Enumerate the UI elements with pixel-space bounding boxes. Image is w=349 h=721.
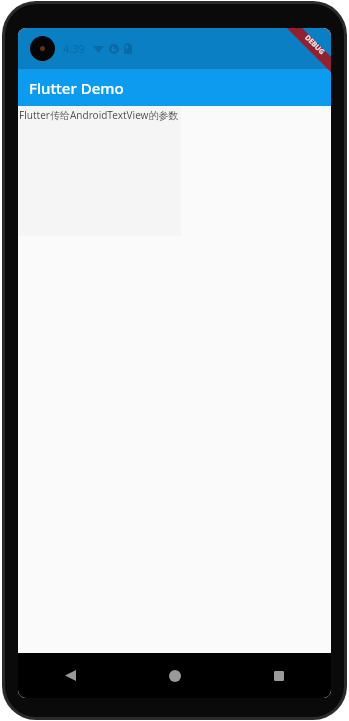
button[interactable]: Recent apps [227, 653, 331, 698]
staticText: Flutter传给AndroidTextView的参数 [19, 108, 179, 122]
button[interactable]: Back [18, 653, 123, 698]
button[interactable]: Flutter Demo [18, 69, 331, 106]
staticText: DEBUG [302, 33, 327, 57]
staticText: 4:39 [63, 41, 85, 56]
staticText: Flutter Demo [29, 78, 124, 98]
button[interactable]: Home [123, 653, 227, 698]
